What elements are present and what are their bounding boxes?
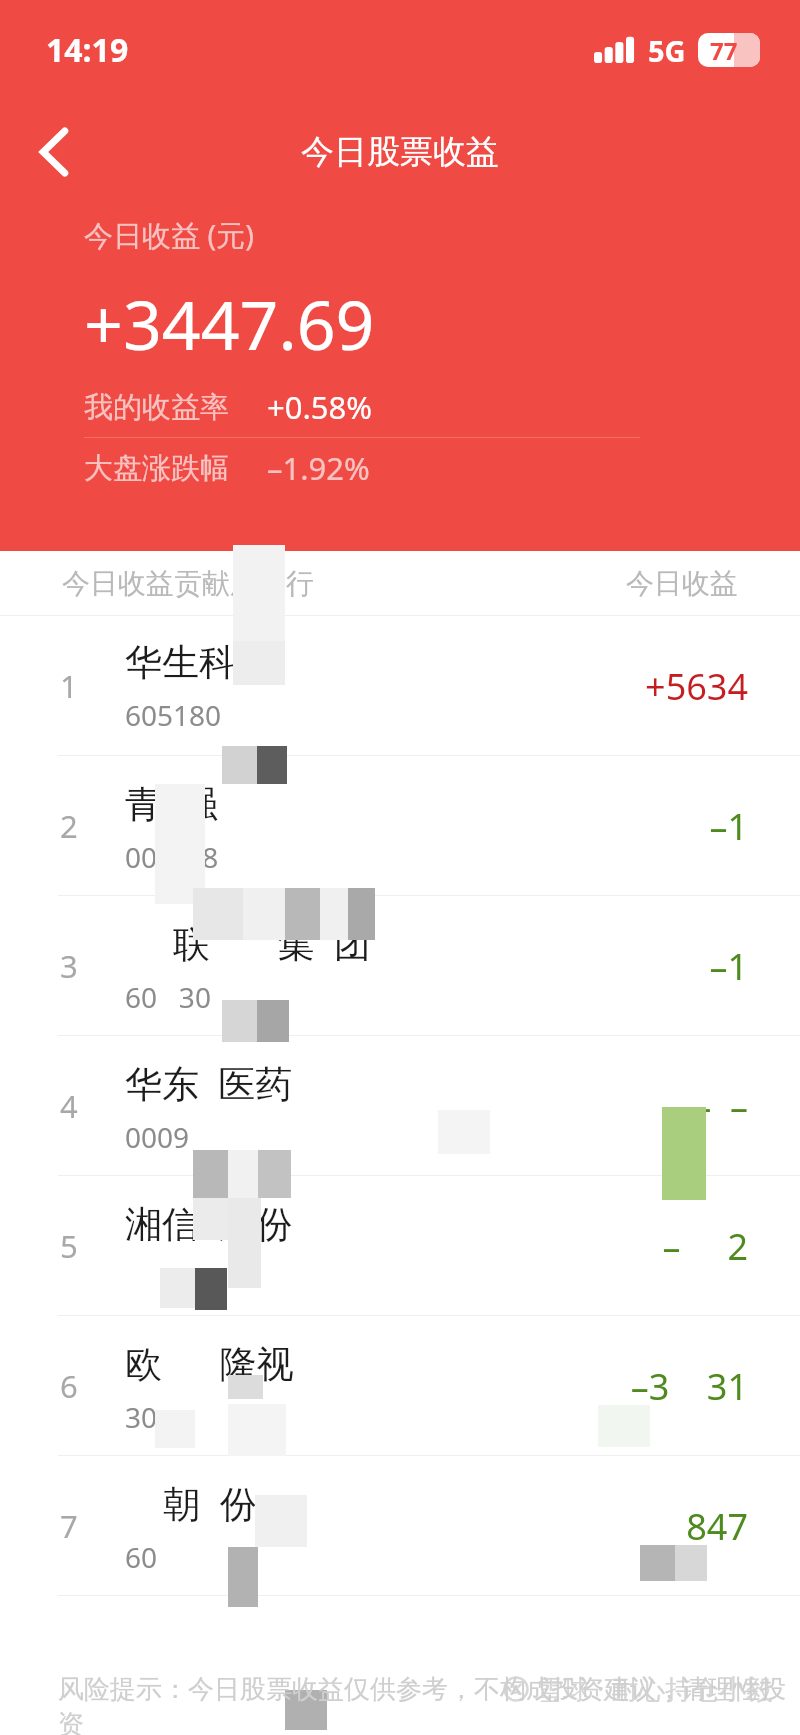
staticText: –1 [709, 942, 748, 991]
button[interactable]: 1 [0, 616, 800, 756]
staticText: 5 [60, 1225, 78, 1267]
staticText: 今日收益贡献度排行 [62, 566, 314, 601]
staticText: 5G [648, 31, 686, 70]
button[interactable]: 5 [0, 1176, 800, 1316]
button[interactable]: 4 [0, 1036, 800, 1176]
staticText: 60 30 [125, 978, 211, 1016]
staticText: 湘信 股份 [125, 1197, 293, 1248]
staticText: 2 [60, 805, 78, 847]
staticText: 6 [60, 1365, 78, 1407]
button[interactable]: 3 [0, 896, 800, 1036]
staticText: –3 31 [630, 1362, 748, 1411]
staticText: 605180 [125, 696, 222, 734]
staticText: 风险提示：今日股票收益仅供参考，不构成投资建议，请理性投资 [58, 1673, 800, 1735]
staticText: –1.92% [267, 447, 370, 489]
staticText: 14:19 [46, 28, 129, 72]
staticText: 华东 医药 [125, 1057, 293, 1108]
staticText: 华生科技 [125, 639, 273, 686]
staticText: 77 [710, 34, 738, 67]
staticText: 今日股票收益 [301, 131, 499, 173]
staticText: 青 强 [125, 777, 219, 828]
staticText: – 2 [662, 1222, 748, 1271]
staticText: 今日收益 [626, 566, 738, 601]
staticText: +0.58% [267, 386, 372, 428]
staticText: 60 [125, 1538, 158, 1576]
staticText: 30 [125, 1398, 158, 1436]
staticText: 7 [60, 1505, 78, 1547]
button[interactable]: 6 [0, 1316, 800, 1456]
staticText: +5634 [645, 662, 748, 711]
staticText: 3 [60, 945, 78, 987]
staticText: –1 [709, 802, 748, 851]
staticText: 0009 [125, 1118, 190, 1156]
staticText: 雪球 · 耐心持仓小毅 [536, 1670, 774, 1707]
staticText: 4 [60, 1085, 78, 1127]
staticText: - – [699, 1082, 748, 1131]
button[interactable]: 7 [0, 1456, 800, 1596]
staticText: 联 集 团 [125, 917, 371, 968]
staticText: 大盘涨跌幅 [84, 450, 229, 487]
staticText: 00 48 [125, 838, 219, 876]
staticText: +3447.69 [84, 277, 375, 370]
button[interactable]: 2 [0, 756, 800, 896]
button[interactable]: Back [18, 122, 90, 182]
staticText: 今日收益 (元) [84, 215, 254, 255]
staticText: 847 [686, 1502, 748, 1551]
staticText: 欧 隆视 [125, 1337, 294, 1388]
staticText: 我的收益率 [84, 389, 229, 426]
staticText: 1 [60, 665, 78, 707]
staticText: 朝 份 [125, 1477, 257, 1528]
